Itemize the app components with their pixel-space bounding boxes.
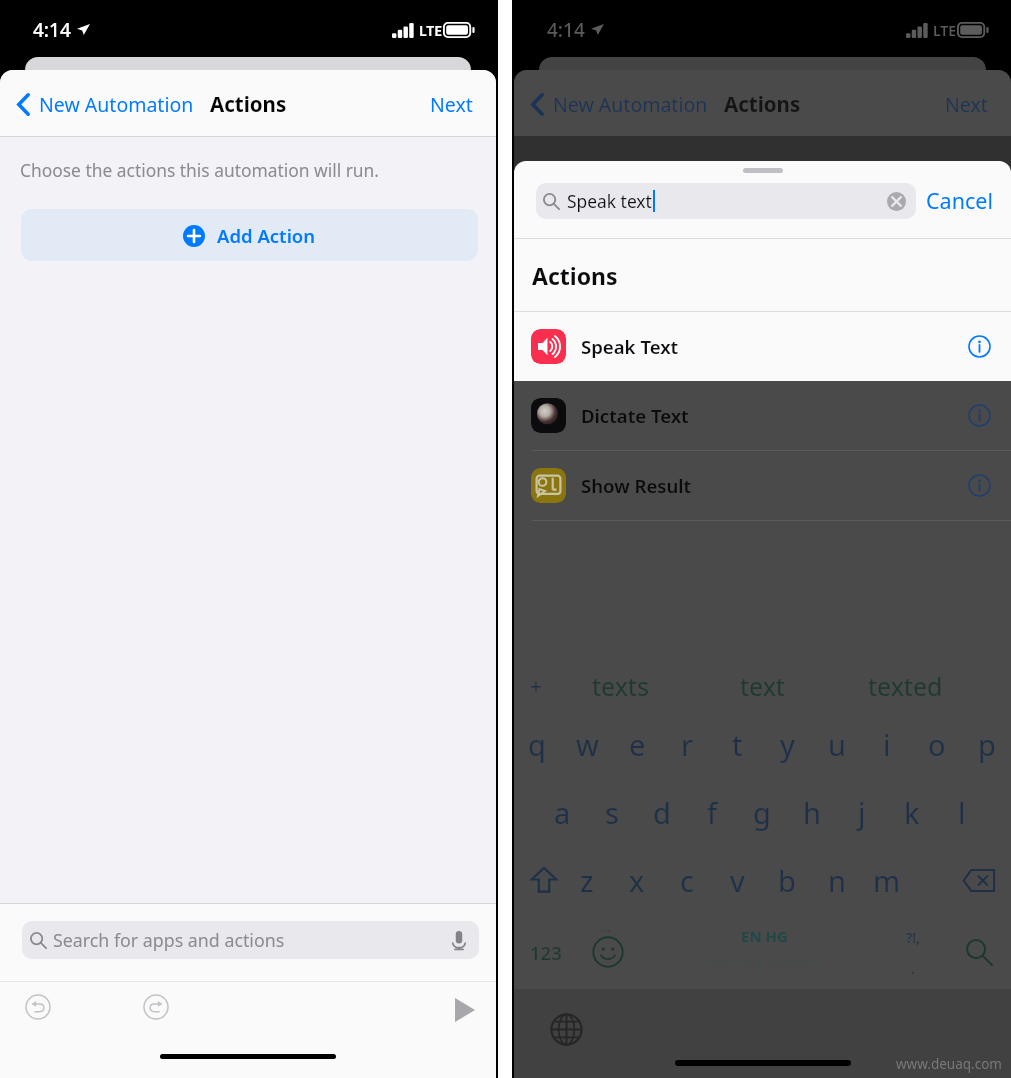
button[interactable]: Redo — [143, 994, 169, 1020]
button[interactable]: text — [702, 662, 822, 710]
staticText: Show Result — [581, 473, 692, 498]
button[interactable]: g — [737, 778, 787, 846]
button[interactable]: y — [762, 710, 812, 778]
staticText: y — [780, 725, 795, 764]
staticText: n — [828, 861, 846, 900]
button[interactable]: Dictate Text — [514, 381, 1011, 450]
button[interactable]: Next — [945, 91, 988, 118]
staticText: texts — [592, 669, 649, 703]
staticText: t — [732, 725, 743, 764]
staticText: e — [629, 725, 646, 764]
button[interactable]: e — [612, 710, 662, 778]
staticText: Speak Text — [581, 334, 679, 359]
button[interactable]: Search — [955, 928, 1003, 976]
button[interactable]: w — [562, 710, 612, 778]
staticText: texted — [868, 669, 943, 703]
staticText: LTE — [419, 21, 443, 40]
staticText: . — [911, 959, 915, 978]
button[interactable]: a — [537, 778, 587, 846]
staticText: u — [828, 725, 846, 764]
staticText: l — [958, 793, 966, 832]
button[interactable]: n — [812, 846, 862, 914]
button[interactable]: Next — [430, 91, 473, 118]
button[interactable]: Show Result — [514, 451, 1011, 520]
staticText: Add Action — [217, 223, 316, 248]
button[interactable]: Add to dictionary — [520, 670, 552, 702]
button[interactable]: o — [912, 710, 962, 778]
button[interactable]: f — [687, 778, 737, 846]
button[interactable]: i — [862, 710, 912, 778]
button[interactable]: b — [762, 846, 812, 914]
staticText: a — [554, 793, 571, 832]
button[interactable]: k — [887, 778, 937, 846]
staticText: Dictate Text — [581, 403, 689, 428]
button[interactable]: r — [662, 710, 712, 778]
button[interactable]: Add Action — [21, 209, 478, 261]
staticText: c — [680, 861, 694, 900]
staticText: Actions — [532, 260, 618, 291]
staticText: k — [904, 793, 920, 832]
button[interactable]: x — [612, 846, 662, 914]
button[interactable]: c — [662, 846, 712, 914]
staticText: Choose the actions this automation will … — [20, 158, 380, 182]
staticText: p — [978, 725, 996, 764]
staticText: EN HG — [741, 926, 788, 946]
staticText: x — [629, 861, 645, 900]
button[interactable]: Speak text — [536, 183, 916, 219]
button[interactable]: About Dictate Text — [968, 404, 991, 427]
staticText: w — [576, 725, 599, 764]
button[interactable]: s — [587, 778, 637, 846]
button[interactable]: v — [712, 846, 762, 914]
staticText: m — [873, 861, 901, 900]
staticText: www.deuaq.com — [896, 1055, 1002, 1073]
button[interactable]: j — [837, 778, 887, 846]
staticText: text — [740, 669, 785, 703]
button[interactable]: Undo — [25, 994, 51, 1020]
staticText: o — [928, 725, 946, 764]
button[interactable]: Clear text — [887, 192, 906, 211]
staticText: 4:14 — [33, 17, 71, 43]
button[interactable]: l — [937, 778, 987, 846]
staticText: Search for apps and actions — [53, 928, 285, 952]
staticText: Actions — [724, 90, 801, 118]
staticText: d — [653, 793, 671, 832]
button[interactable]: Backspace — [955, 850, 1003, 910]
button[interactable]: 123 — [520, 926, 572, 978]
button[interactable]: ?!, — [891, 928, 935, 984]
staticText: s — [605, 793, 619, 832]
staticText: g — [753, 793, 771, 832]
button[interactable]: EN HG — [669, 926, 859, 984]
staticText: LTE — [933, 21, 957, 40]
button[interactable]: z — [562, 846, 612, 914]
button[interactable]: p — [962, 710, 1011, 778]
button[interactable]: Change keyboard language — [550, 1013, 583, 1046]
button[interactable]: texted — [845, 662, 965, 710]
button[interactable]: texts — [560, 662, 680, 710]
staticText: ?!, — [906, 928, 920, 947]
button[interactable]: m — [862, 846, 912, 914]
button[interactable]: h — [787, 778, 837, 846]
staticText: New Automation — [553, 91, 708, 118]
button[interactable]: Run — [453, 996, 477, 1024]
button[interactable]: d — [637, 778, 687, 846]
button[interactable]: Cancel — [926, 186, 993, 215]
button[interactable]: u — [812, 710, 862, 778]
button[interactable]: t — [712, 710, 762, 778]
staticText: + — [530, 672, 543, 701]
button[interactable]: q — [514, 710, 562, 778]
button[interactable]: About Show Result — [968, 474, 991, 497]
staticText: Speak text — [567, 189, 652, 213]
button[interactable]: Search for apps and actions — [22, 921, 479, 959]
button[interactable]: Speak Text — [514, 312, 1011, 381]
button[interactable]: About Speak Text — [968, 335, 991, 358]
staticText: ... — [600, 918, 611, 936]
button[interactable]: Emoji — [586, 930, 630, 974]
button[interactable]: New Automation — [531, 91, 708, 118]
staticText: r — [681, 725, 693, 764]
staticText: v — [730, 861, 745, 900]
staticText: z — [580, 861, 594, 900]
button[interactable]: New Automation — [17, 91, 194, 118]
staticText: q — [528, 725, 546, 764]
button[interactable]: Shift — [522, 850, 566, 910]
